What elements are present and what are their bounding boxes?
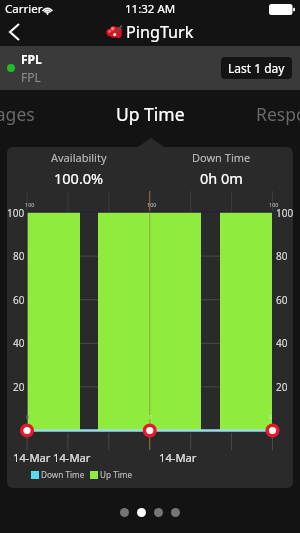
staticText: Up Time [100,469,133,480]
staticText: Carrier [5,1,43,17]
staticText: 0 [149,413,153,420]
staticText: 11:32 AM [125,1,176,17]
button[interactable] [120,508,129,517]
button[interactable]: Last 1 day [221,57,292,79]
staticText: 14-Mar [159,450,197,465]
button[interactable] [154,508,163,517]
staticText: 14-Mar [53,450,91,465]
button[interactable]: FPL [0,46,300,90]
staticText: 60 [276,293,288,307]
staticText: 100 [7,206,25,220]
staticText: 100 [25,201,35,208]
staticText: 100 [276,206,293,220]
staticText: Down Time [41,469,85,480]
staticText: FPL [21,51,42,67]
staticText: 80 [276,249,288,263]
staticText: 0 [269,413,273,420]
staticText: 20 [276,380,288,394]
staticText: Down Time [192,150,251,165]
staticText: 60 [13,293,25,307]
staticText: 40 [13,336,25,350]
button[interactable]: Up Time [116,102,185,126]
button[interactable]: Outages [0,102,35,126]
staticText: Availability [51,150,107,165]
staticText: Last 1 day [228,60,285,76]
staticText: FPL [21,69,41,85]
staticText: 100 [147,201,157,208]
staticText: 40 [276,336,288,350]
staticText: 20 [13,380,25,394]
staticText: 14-Mar [13,450,51,465]
staticText: 100 [269,201,279,208]
button[interactable] [171,508,180,517]
button[interactable]: Response [256,102,300,126]
staticText: PingTurk [126,21,194,43]
staticText: 0h 0m [200,168,243,188]
staticText: 100.0% [54,168,104,188]
button[interactable] [137,508,146,517]
staticText: 80 [13,249,25,263]
button[interactable]: Back [0,18,28,46]
staticText: 0 [26,413,30,420]
